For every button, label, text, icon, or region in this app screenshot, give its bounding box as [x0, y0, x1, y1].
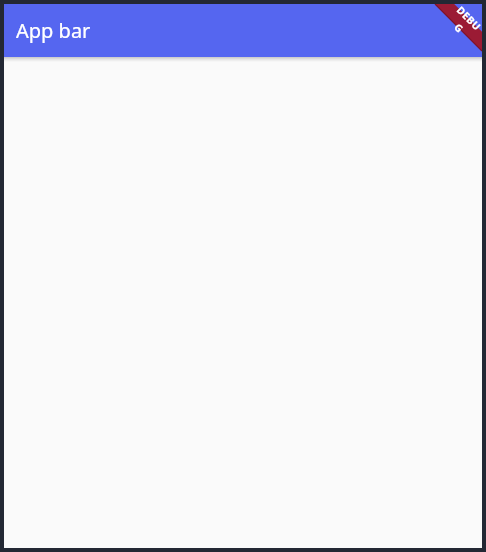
button[interactable]: App bar	[16, 13, 91, 48]
other: Debug banner	[434, 4, 482, 52]
staticText: DEBUG	[441, 4, 482, 46]
staticText: App bar	[16, 17, 91, 44]
